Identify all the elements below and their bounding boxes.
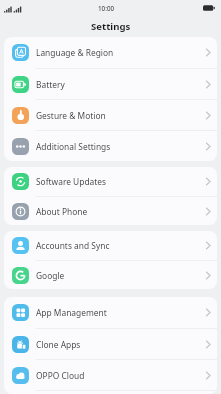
staticText: Settings — [91, 20, 131, 33]
button[interactable]: Google — [4, 261, 217, 289]
staticText: Clone Apps — [36, 339, 81, 350]
staticText: Software Updates — [36, 176, 107, 187]
staticText: OPPO Cloud — [36, 370, 85, 381]
button[interactable]: Language & Region — [4, 37, 217, 68]
staticText: About Phone — [36, 206, 88, 217]
button[interactable]: Additional Settings — [4, 131, 217, 161]
staticText: App Management — [36, 307, 107, 318]
staticText: Gesture & Motion — [36, 110, 106, 121]
staticText: 10:00 — [98, 4, 115, 13]
staticText: Battery — [36, 79, 65, 90]
button[interactable]: Battery — [4, 69, 217, 99]
staticText: Additional Settings — [36, 141, 111, 152]
button[interactable]: About Phone — [4, 197, 217, 225]
staticText: Accounts and Sync — [36, 240, 110, 251]
button[interactable]: Gesture & Motion — [4, 100, 217, 130]
button[interactable]: App Management — [4, 297, 217, 328]
button[interactable]: OPPO Cloud — [4, 360, 217, 390]
staticText: Language & Region — [36, 47, 114, 58]
button[interactable]: Software Updates — [4, 167, 217, 196]
staticText: Google — [36, 270, 65, 281]
button[interactable]: Clone Apps — [4, 329, 217, 359]
button[interactable]: Accounts and Sync — [4, 231, 217, 260]
